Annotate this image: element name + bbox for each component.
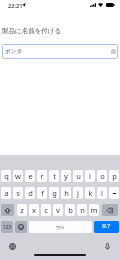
button[interactable]: Dictation	[102, 241, 112, 251]
button[interactable]: r	[37, 170, 47, 182]
staticText: u	[76, 171, 81, 181]
staticText: h	[64, 188, 69, 198]
staticText: j	[77, 188, 79, 198]
button[interactable]: Next keyboard	[7, 241, 17, 251]
staticText: n	[80, 205, 85, 215]
button[interactable]: o	[97, 170, 107, 182]
staticText: i	[89, 171, 91, 181]
button[interactable]: p	[109, 170, 119, 182]
button[interactable]: 空白	[29, 221, 92, 233]
staticText: l	[101, 188, 103, 198]
button[interactable]: s	[13, 187, 23, 199]
staticText: 製品に名前を付ける	[2, 27, 62, 35]
staticText: a	[4, 188, 9, 198]
button[interactable]: k	[85, 187, 95, 199]
button[interactable]: Backspace	[102, 204, 118, 216]
staticText: x	[32, 205, 36, 215]
button[interactable]: f	[37, 187, 47, 199]
button[interactable]: Long vowel mark	[109, 187, 119, 199]
staticText: y	[64, 171, 68, 181]
button[interactable]: Shift	[1, 204, 14, 216]
button[interactable]: x	[29, 204, 39, 216]
button[interactable]: v	[53, 204, 63, 216]
staticText: ポンタ	[5, 48, 23, 55]
button[interactable]: i	[85, 170, 95, 182]
staticText: 22:21	[8, 2, 23, 10]
button[interactable]: h	[61, 187, 71, 199]
button[interactable]: l	[97, 187, 107, 199]
staticText: p	[112, 171, 117, 181]
button[interactable]: b	[65, 204, 75, 216]
staticText: 空白	[56, 225, 65, 230]
staticText: r	[40, 171, 44, 181]
button[interactable]: m	[89, 204, 99, 216]
staticText: o	[100, 171, 105, 181]
button[interactable]: w	[13, 170, 23, 182]
staticText: s	[16, 188, 20, 198]
button[interactable]: ポンタ	[2, 44, 118, 59]
staticText: q	[4, 171, 9, 181]
button[interactable]: Numbers	[1, 221, 13, 233]
staticText: z	[20, 205, 24, 215]
button[interactable]: t	[49, 170, 59, 182]
staticText: m	[90, 205, 98, 215]
staticText: e	[28, 171, 33, 181]
button[interactable]: z	[17, 204, 27, 216]
button[interactable]: y	[61, 170, 71, 182]
button[interactable]: Clear text	[111, 49, 116, 54]
button[interactable]: Emoji	[15, 221, 27, 233]
button[interactable]: j	[73, 187, 83, 199]
staticText: 完了	[102, 224, 111, 230]
staticText: 123	[3, 224, 12, 231]
staticText: w	[15, 171, 21, 181]
staticText: c	[44, 205, 48, 215]
button[interactable]: q	[1, 170, 11, 182]
staticText: k	[88, 188, 93, 198]
button[interactable]: e	[25, 170, 35, 182]
staticText: g	[52, 188, 57, 198]
button[interactable]: Done	[94, 221, 119, 233]
staticText: f	[41, 188, 44, 198]
staticText: t	[53, 171, 56, 181]
staticText: b	[68, 205, 73, 215]
button[interactable]: c	[41, 204, 51, 216]
staticText: v	[56, 205, 60, 215]
button[interactable]: u	[73, 170, 83, 182]
button[interactable]: n	[77, 204, 87, 216]
button[interactable]: d	[25, 187, 35, 199]
button[interactable]: a	[1, 187, 11, 199]
staticText: d	[28, 188, 33, 198]
button[interactable]: g	[49, 187, 59, 199]
